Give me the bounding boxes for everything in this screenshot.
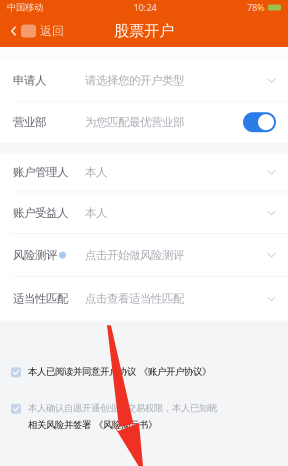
staticText: 点击开始做风险测评 [85, 248, 184, 262]
button[interactable]: 本人已阅读并同意开户协议 《账户开户协议》 [0, 363, 288, 380]
button[interactable]: 本人确认自愿开通创业板交易权限，本人已知晓 [0, 399, 288, 433]
staticText: 请选择您的开户类型 [85, 73, 184, 88]
button[interactable]: 适当性匹配 [0, 277, 288, 321]
staticText: 点击查看适当性匹配 [85, 292, 184, 306]
staticText: 78% [247, 1, 265, 14]
button[interactable]: 申请人 [0, 60, 288, 101]
staticText: 为您匹配最优营业部 [85, 115, 184, 129]
staticText: 返回 [40, 24, 64, 38]
button[interactable]: 账户受益人 [0, 192, 288, 233]
staticText: 中国移动 [7, 2, 43, 13]
staticText: 10:24 [133, 1, 156, 14]
staticText: 相关风险并签署 《风险揭示书》 [28, 419, 157, 431]
staticText: 风险测评 [13, 248, 57, 262]
button[interactable]: 营业部 [0, 102, 288, 143]
button[interactable]: 返回 [0, 15, 74, 47]
staticText: 账户管理人 [13, 165, 68, 179]
staticText: 营业部 [13, 115, 46, 129]
button[interactable]: 风险测评 [0, 234, 288, 276]
staticText: 股票开户 [114, 21, 174, 41]
staticText: 本人已阅读并同意开户协议 《账户开户协议》 [28, 366, 211, 377]
staticText: 申请人 [13, 73, 46, 88]
button[interactable]: 账户管理人 [0, 153, 288, 192]
staticText: 账户受益人 [13, 206, 68, 220]
staticText: 本人确认自愿开通创业板交易权限，本人已知晓 [28, 402, 217, 414]
staticText: 适当性匹配 [13, 292, 68, 306]
staticText: 本人 [85, 206, 107, 220]
staticText: 本人 [85, 165, 107, 179]
